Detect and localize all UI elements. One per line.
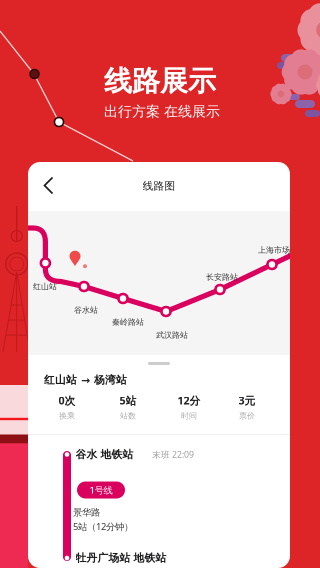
- staticText: 谷水站: [74, 305, 98, 315]
- staticText: 5站（12分钟）: [73, 520, 133, 533]
- staticText: 3元: [238, 393, 255, 408]
- staticText: 长安路站: [206, 272, 238, 282]
- staticText: 票价: [239, 411, 255, 421]
- staticText: 1号线: [89, 484, 112, 496]
- staticText: 时间: [181, 411, 197, 421]
- staticText: 站数: [120, 411, 136, 421]
- staticText: 末班 22:09: [152, 449, 194, 460]
- staticText: 谷水 地铁站: [76, 448, 134, 461]
- staticText: 线路展示: [104, 63, 216, 99]
- staticText: 出行方案 在线展示: [104, 103, 220, 120]
- button[interactable]: Back: [34, 169, 64, 203]
- staticText: 上海市场站: [258, 245, 298, 255]
- staticText: 5站: [119, 393, 136, 408]
- staticText: 红山站: [33, 281, 57, 292]
- staticText: 牡丹广场站 地铁站: [76, 551, 167, 565]
- staticText: 0次: [58, 393, 75, 408]
- staticText: 线路图: [142, 179, 175, 193]
- staticText: 12分: [177, 393, 200, 408]
- staticText: 秦岭路站: [112, 317, 144, 327]
- staticText: 换乘: [59, 411, 75, 421]
- staticText: 武汉路站: [156, 330, 188, 340]
- staticText: 红山站 → 杨湾站: [44, 373, 127, 387]
- staticText: 景华路: [73, 507, 100, 518]
